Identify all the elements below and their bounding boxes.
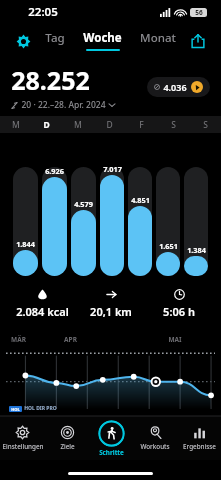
staticText: APR bbox=[64, 335, 77, 344]
staticText: 22:05 bbox=[28, 4, 58, 20]
button[interactable]: Tag bbox=[43, 28, 67, 53]
staticText: D bbox=[43, 119, 50, 131]
button[interactable]: Workouts bbox=[133, 416, 177, 460]
staticText: Woche bbox=[83, 30, 122, 46]
staticText: 5:06 h bbox=[163, 304, 195, 319]
button[interactable]: S bbox=[157, 116, 189, 133]
staticText: 4.579 bbox=[74, 199, 93, 209]
button[interactable]: M bbox=[62, 116, 93, 133]
staticText: Ziele bbox=[60, 442, 75, 451]
staticText: F bbox=[139, 119, 144, 131]
button[interactable]: 6.926 bbox=[42, 167, 67, 276]
staticText: HOL bbox=[11, 407, 20, 412]
staticText: S bbox=[203, 119, 208, 131]
button[interactable]: 4.851 bbox=[128, 167, 152, 276]
staticText: 6.926 bbox=[45, 166, 64, 176]
button[interactable]: 2.084 kcal bbox=[8, 287, 77, 321]
staticText: MÄR bbox=[11, 335, 26, 344]
button[interactable]: F bbox=[125, 116, 157, 133]
staticText: 7.017 bbox=[103, 164, 122, 174]
staticText: 1.844 bbox=[16, 239, 35, 249]
staticText: MAI bbox=[168, 335, 182, 344]
button[interactable]: D bbox=[93, 116, 125, 133]
staticText: HOL DIR PRO bbox=[24, 405, 57, 412]
staticText: Workouts bbox=[140, 442, 170, 451]
button[interactable]: M bbox=[0, 116, 31, 133]
button[interactable]: Ergebnisse bbox=[177, 416, 221, 460]
button[interactable]: S bbox=[189, 116, 221, 133]
staticText: Monat bbox=[140, 30, 176, 46]
button[interactable]: 5:06 h bbox=[145, 287, 213, 321]
staticText: M bbox=[74, 119, 82, 131]
button[interactable]: 1.844 bbox=[13, 167, 38, 276]
button[interactable]: 1.384 bbox=[184, 167, 208, 276]
staticText: 4.036 bbox=[163, 81, 187, 93]
button[interactable]: 4.036 bbox=[147, 77, 210, 97]
staticText: S bbox=[171, 119, 176, 131]
staticText: Ergebnisse bbox=[183, 442, 216, 451]
staticText: Schritte bbox=[99, 448, 124, 457]
button[interactable]: 4.579 bbox=[71, 167, 96, 276]
button[interactable]: Einstellungen bbox=[0, 416, 45, 460]
staticText: 4.851 bbox=[131, 195, 150, 205]
staticText: Einstellungen bbox=[2, 442, 44, 451]
staticText: 28.252 bbox=[11, 63, 90, 97]
button[interactable]: Monat bbox=[138, 28, 178, 53]
button[interactable]: Share bbox=[185, 28, 211, 54]
staticText: 2.084 kcal bbox=[16, 304, 69, 319]
button[interactable]: Ziele bbox=[45, 416, 89, 460]
button[interactable]: Schritte bbox=[89, 416, 133, 460]
staticText: D bbox=[106, 119, 113, 131]
staticText: 56 bbox=[195, 8, 203, 17]
button[interactable]: 1.651 bbox=[156, 167, 180, 276]
staticText: 20 · 22.–28. Apr. 2024 bbox=[21, 99, 106, 111]
staticText: M bbox=[12, 119, 20, 131]
button[interactable] bbox=[0, 347, 221, 409]
staticText: Tag bbox=[45, 30, 65, 46]
staticText: 20,1 km bbox=[90, 304, 132, 319]
button[interactable]: D bbox=[31, 116, 62, 133]
staticText: 1.651 bbox=[159, 241, 178, 251]
button[interactable]: Settings bbox=[10, 28, 36, 54]
button[interactable]: 7.017 bbox=[100, 167, 124, 276]
button[interactable]: 20,1 km bbox=[77, 287, 145, 321]
button[interactable]: Woche bbox=[81, 28, 124, 53]
staticText: 1.384 bbox=[187, 245, 206, 255]
